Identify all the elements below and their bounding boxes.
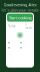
staticText: let's plan your meals <box>1 7 38 13</box>
staticText: Start cooking <box>9 15 31 20</box>
staticText: Good evening, Alex <box>3 2 36 7</box>
staticText: Today <box>8 24 15 28</box>
button[interactable]: Start cooking <box>7 14 33 22</box>
staticText: 3 meals <box>25 23 32 30</box>
